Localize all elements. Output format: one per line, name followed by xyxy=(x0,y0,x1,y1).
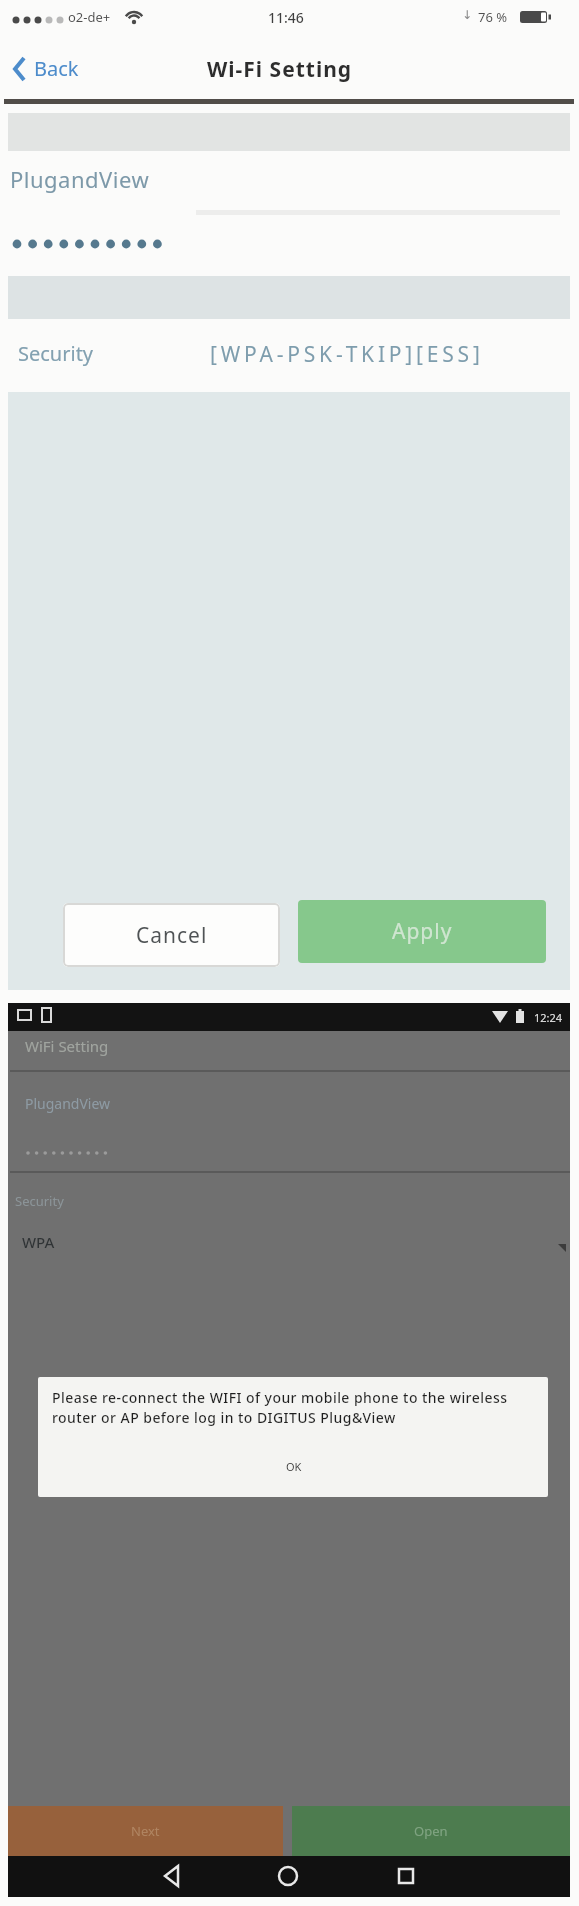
staticText: Please re-connect the WIFI of your mobil… xyxy=(52,1388,508,1407)
button[interactable]: OK xyxy=(266,1452,322,1480)
staticText: ↓ xyxy=(462,8,473,22)
staticText: Security xyxy=(18,340,94,367)
staticText: Back xyxy=(34,55,79,82)
staticText: 12:24 xyxy=(534,1010,563,1025)
button[interactable] xyxy=(390,1860,422,1892)
button[interactable]: Back xyxy=(10,52,110,90)
button[interactable]: Apply xyxy=(298,900,546,963)
button[interactable] xyxy=(272,1860,304,1892)
staticText: WiFi Setting xyxy=(25,1036,109,1056)
staticText: WPA xyxy=(22,1232,55,1252)
staticText: Cancel xyxy=(136,921,208,950)
staticText: Next xyxy=(131,1822,160,1840)
staticText: router or AP before log in to DIGITUS Pl… xyxy=(52,1408,396,1427)
staticText: [WPA-PSK-TKIP][ESS] xyxy=(210,340,484,369)
button[interactable]: Open xyxy=(292,1806,570,1856)
staticText: 11:46 xyxy=(268,8,304,27)
button[interactable]: Cancel xyxy=(63,903,280,967)
button[interactable] xyxy=(156,1860,188,1892)
staticText: OK xyxy=(286,1459,302,1474)
staticText: Wi-Fi Setting xyxy=(207,55,353,84)
staticText: 76 % xyxy=(478,8,508,26)
staticText: PlugandView xyxy=(10,164,150,194)
staticText: Security xyxy=(15,1192,64,1210)
staticText: PlugandView xyxy=(25,1094,111,1113)
staticText: o2-de+ xyxy=(68,8,111,26)
staticText: Apply xyxy=(392,917,453,946)
staticText: Open xyxy=(414,1822,448,1840)
